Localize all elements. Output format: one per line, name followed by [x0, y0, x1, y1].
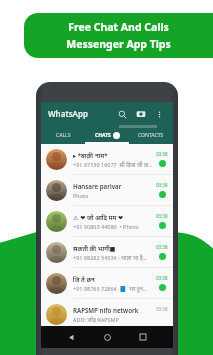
staticText: ▸ *बाक़ी नाम*: [73, 151, 108, 159]
staticText: 03:38: [156, 213, 168, 219]
button[interactable]: More options: [152, 107, 166, 121]
staticText: 03:38: [156, 275, 168, 281]
button[interactable]: RAPSMP nifo network: [41, 299, 173, 329]
staticText: 03:38: [156, 182, 168, 188]
button[interactable]: Back: [65, 331, 77, 343]
staticText: CALLS: [56, 132, 71, 139]
staticText: CONTACTS: [138, 132, 164, 139]
staticText: 03:38: [156, 306, 168, 312]
button[interactable]: Hansare parivar: [41, 175, 173, 205]
button[interactable]: Recent apps: [137, 331, 149, 343]
staticText: WhatsApp: [48, 108, 88, 119]
staticText: 03:38: [156, 151, 168, 157]
button[interactable]: CALLS: [41, 128, 85, 142]
button[interactable]: Home: [101, 331, 113, 343]
staticText: ⚠ ❤ जो आदि मम ❤: [73, 213, 124, 221]
staticText: +91 97130 16077 सी किस जी को…: [73, 161, 153, 168]
button[interactable]: ⚠ ❤ जो आदि मम ❤: [41, 206, 173, 236]
button[interactable]: सकती की भागी■: [41, 237, 173, 267]
staticText: ADD: जोड़ RAPSMP: [73, 316, 119, 323]
staticText: +91 90803 44080 • Photo: [73, 223, 139, 230]
staticText: जि ते छन: [73, 275, 95, 283]
staticText: Photo: [73, 192, 89, 199]
button[interactable]: जि ते छन: [41, 268, 173, 298]
button[interactable]: Search: [115, 107, 129, 121]
staticText: 03:38: [156, 244, 168, 250]
staticText: CHATS: [95, 132, 111, 139]
staticText: सकती की भागी■: [73, 244, 116, 252]
staticText: Free Chat And Calls: [68, 20, 169, 34]
staticText: +91 98765 72864 📘 भर हुन…: [73, 285, 148, 292]
button[interactable]: CONTACTS: [129, 128, 173, 142]
button[interactable]: CHATS: [85, 128, 129, 142]
button[interactable]: ▸ *बाक़ी नाम*: [41, 144, 173, 174]
staticText: RAPSMP nifo network: [73, 306, 139, 314]
staticText: Messenger App Tips: [66, 37, 171, 51]
button[interactable]: Camera: [134, 107, 148, 121]
button[interactable]: Free Chat And Calls: [24, 13, 213, 58]
staticText: Hansare parivar: [73, 182, 122, 190]
staticText: +91 98282 54534 : भाला भा है…: [73, 254, 147, 261]
